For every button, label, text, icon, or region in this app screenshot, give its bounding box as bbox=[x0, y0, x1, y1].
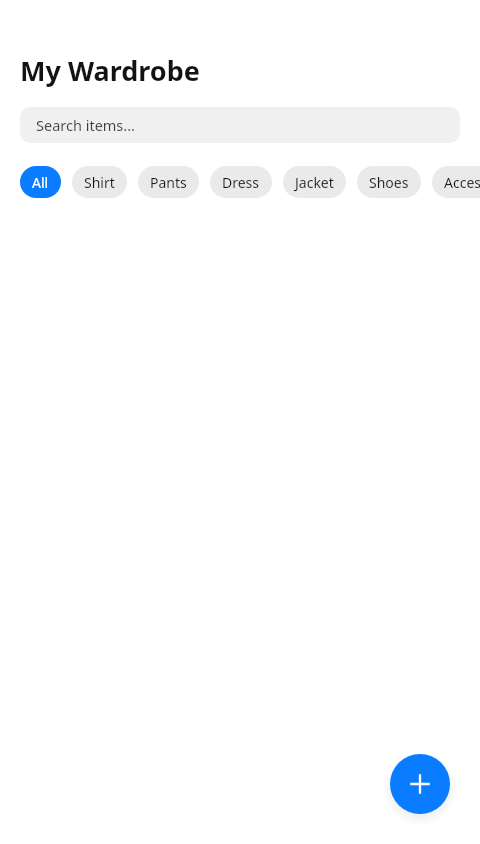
button[interactable]: Jacket bbox=[283, 166, 346, 198]
button[interactable]: Add item bbox=[390, 754, 450, 814]
staticText: Dress bbox=[222, 173, 260, 192]
staticText: Jacket bbox=[295, 173, 334, 192]
staticText: My Wardrobe bbox=[20, 52, 200, 89]
staticText: Search items... bbox=[36, 115, 135, 135]
staticText: Shoes bbox=[369, 173, 409, 192]
staticText: Pants bbox=[150, 173, 187, 192]
button[interactable]: Search items... bbox=[20, 107, 460, 143]
button[interactable]: All bbox=[20, 166, 61, 198]
button[interactable]: Shoes bbox=[357, 166, 421, 198]
staticText: Accessories bbox=[444, 173, 480, 192]
button[interactable]: Dress bbox=[210, 166, 272, 198]
button[interactable]: Pants bbox=[138, 166, 199, 198]
staticText: All bbox=[32, 173, 49, 192]
button[interactable]: Shirt bbox=[72, 166, 127, 198]
button[interactable]: Accessories bbox=[432, 166, 480, 198]
staticText: Shirt bbox=[84, 173, 115, 192]
